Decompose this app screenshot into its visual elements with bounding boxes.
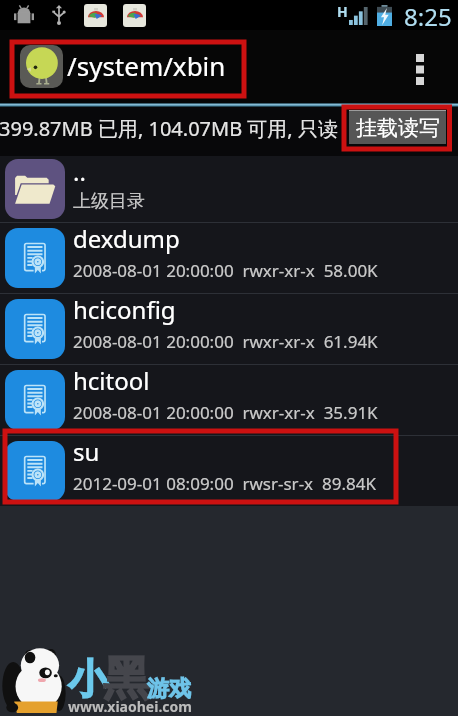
- staticText: 游戏: [147, 675, 191, 703]
- staticText: ..: [73, 155, 86, 188]
- staticText: hciconfig: [73, 293, 176, 326]
- staticText: 上级目录: [73, 190, 145, 213]
- button[interactable]: /system/xbin: [0, 30, 458, 103]
- button[interactable]: 挂载读写: [349, 110, 446, 144]
- staticText: www.xiaohei.com: [68, 697, 192, 716]
- button[interactable]: ..: [0, 156, 458, 222]
- staticText: 399.87MB 已用, 104.07MB 可用, 只读: [0, 115, 338, 142]
- staticText: H: [337, 2, 348, 21]
- button[interactable]: hciconfig: [0, 294, 458, 364]
- staticText: 2008-08-01 20:00:00 rwxr-xr-x 35.91K: [73, 401, 378, 424]
- button[interactable]: More options: [382, 30, 458, 103]
- button[interactable]: dexdump: [0, 223, 458, 293]
- button[interactable]: hcitool: [0, 365, 458, 435]
- staticText: 小: [68, 654, 108, 704]
- staticText: 2008-08-01 20:00:00 rwxr-xr-x 61.94K: [73, 330, 378, 353]
- button[interactable]: su: [0, 436, 458, 506]
- staticText: 2008-08-01 20:00:00 rwxr-xr-x 58.00K: [73, 259, 378, 282]
- staticText: dexdump: [73, 222, 180, 255]
- staticText: hcitool: [73, 364, 150, 397]
- staticText: /system/xbin: [67, 48, 226, 83]
- staticText: su: [73, 435, 100, 468]
- staticText: 挂载读写: [356, 115, 440, 141]
- staticText: 2012-09-01 08:09:00 rwsr-sr-x 89.84K: [73, 472, 376, 495]
- staticText: 8:25: [404, 0, 452, 30]
- staticText: 黑: [103, 650, 149, 708]
